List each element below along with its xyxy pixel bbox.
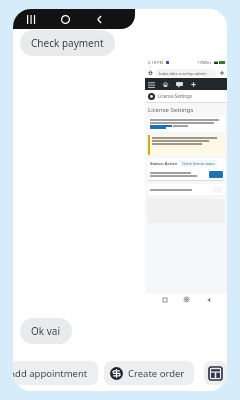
button[interactable]: Create invoice — [204, 361, 227, 385]
staticText: Add appointment — [13, 367, 88, 380]
staticText: 2:18 PM — [148, 60, 164, 65]
button[interactable]: Back — [92, 12, 106, 26]
staticText: 17MB/s — [197, 60, 212, 65]
staticText: License Settings — [158, 93, 192, 99]
button[interactable]: Check payment — [20, 30, 115, 56]
staticText: Check license status — [182, 161, 215, 166]
button[interactable]: Ok vai — [20, 318, 72, 344]
staticText: baba-labs.com/wp-admin — [159, 71, 207, 76]
staticText: Ok vai — [31, 324, 61, 338]
button[interactable]: Add appointment — [13, 361, 98, 385]
button[interactable]: Recent apps — [24, 12, 38, 26]
button[interactable]: Home — [58, 12, 72, 26]
staticText: License Settings — [148, 106, 194, 114]
button[interactable]: Check license status — [180, 160, 217, 167]
button[interactable]: Create order — [104, 361, 194, 385]
staticText: Create order — [128, 367, 185, 380]
staticText: Status: Active — [150, 161, 178, 166]
staticText: Check payment — [31, 36, 104, 50]
button[interactable]: 2:18 PM — [145, 57, 227, 305]
